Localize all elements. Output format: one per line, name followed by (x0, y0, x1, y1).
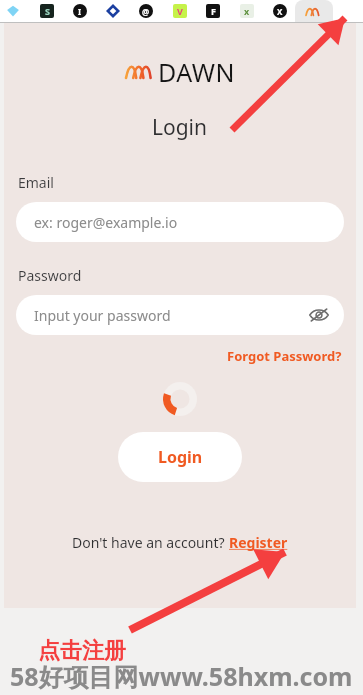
staticText: Forgot Password? (227, 347, 342, 365)
button[interactable]: Login (118, 432, 242, 482)
staticText: F (211, 5, 216, 17)
staticText: ex: roger@example.io (34, 213, 178, 232)
staticText: Login (158, 446, 203, 468)
staticText: x (244, 5, 250, 17)
staticText: Login (152, 113, 208, 142)
staticText: Don't have an account? (72, 533, 229, 552)
button[interactable]: Forgot Password? (227, 347, 342, 365)
button[interactable]: Register (229, 533, 288, 552)
staticText: S (45, 5, 50, 17)
staticText: X (277, 6, 283, 17)
staticText: I (78, 6, 82, 17)
staticText: 点击注册 (38, 637, 126, 665)
staticText: V (177, 5, 183, 17)
button[interactable]: ex: roger@example.io (16, 202, 344, 242)
staticText: Email (18, 173, 54, 192)
button[interactable]: Input your password (16, 295, 344, 335)
staticText: DAWN (158, 55, 235, 89)
staticText: Input your password (34, 306, 171, 325)
staticText: 58好项目网www.58hxm.com (10, 659, 353, 693)
staticText: Register (229, 533, 288, 552)
button[interactable]: Show password (306, 302, 332, 328)
staticText: Password (18, 266, 82, 285)
staticText: @ (142, 6, 150, 17)
